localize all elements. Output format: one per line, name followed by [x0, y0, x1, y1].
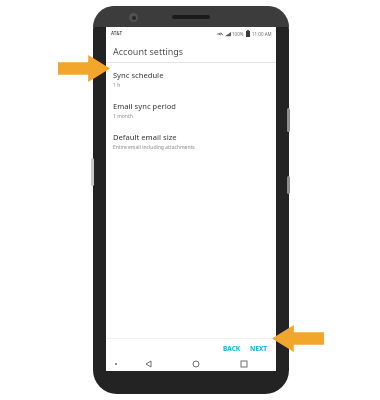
staticText: BACK	[223, 344, 241, 353]
staticText: Sync schedule	[113, 70, 164, 80]
button[interactable]: Email sync period	[106, 94, 276, 125]
button[interactable]: Sync schedule	[106, 63, 276, 94]
staticText: AT&T	[111, 30, 123, 36]
staticText: Entire email including attachments	[113, 144, 195, 151]
staticText: Account settings	[113, 45, 184, 57]
staticText: Default email size	[113, 132, 177, 142]
button[interactable]: Home	[189, 357, 203, 371]
button[interactable]: NEXT	[246, 340, 276, 357]
button[interactable]: Back	[141, 357, 155, 371]
staticText: 1 month	[113, 113, 133, 120]
staticText: NEXT	[250, 344, 268, 353]
button[interactable]: Default email size	[106, 125, 276, 156]
button[interactable]: BACK	[218, 340, 246, 357]
button[interactable]: Recent apps	[237, 357, 251, 371]
staticText: 1 h	[113, 82, 121, 89]
staticText: Email sync period	[113, 101, 176, 111]
staticText: 11:00 AM	[252, 31, 272, 37]
staticText: 100%	[232, 31, 244, 37]
